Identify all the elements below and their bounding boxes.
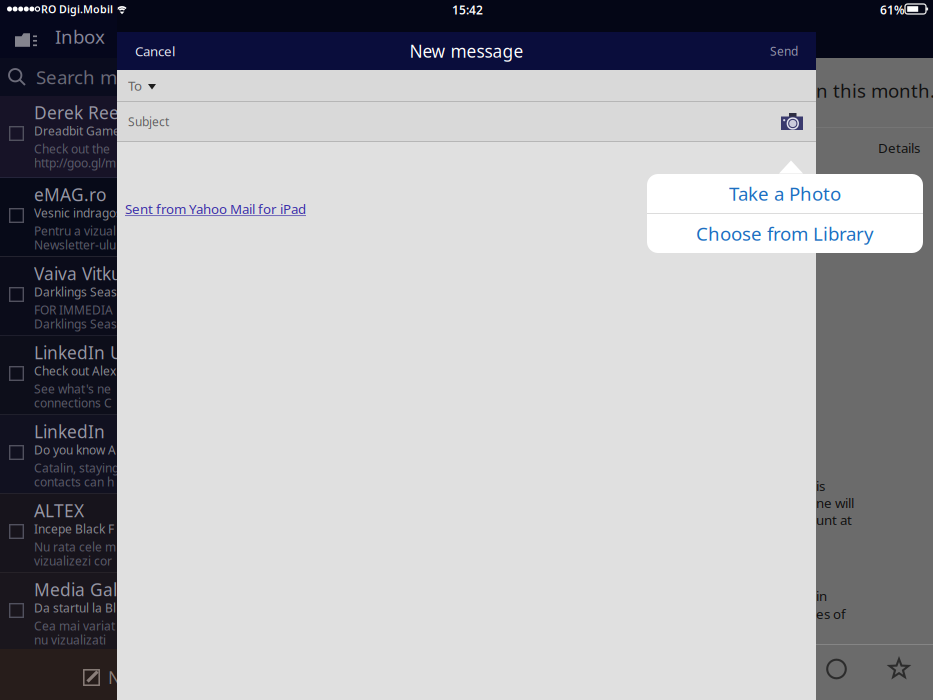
button[interactable]: N	[0, 649, 117, 700]
button[interactable]: Media Gala	[0, 573, 117, 649]
staticText: unt at	[816, 511, 852, 529]
staticText: Cea mai variat	[34, 618, 115, 634]
staticText: Darklings Seas	[34, 284, 117, 300]
button[interactable]: eMAG.ro	[0, 178, 117, 256]
staticText: Dreadbit Games	[34, 123, 126, 139]
staticText: Darklings Seas	[34, 316, 117, 332]
staticText: LinkedIn Up	[34, 341, 134, 364]
button[interactable]: Vaiva Vitkut	[0, 257, 117, 335]
staticText: FOR IMMEDIA	[34, 302, 113, 318]
staticText: Cancel	[135, 42, 175, 60]
button[interactable]: Take a Photo	[647, 174, 923, 213]
staticText: Sent from Yahoo Mail for iPad	[125, 200, 306, 218]
button[interactable]: To	[117, 70, 816, 101]
staticText: See what's ne	[34, 381, 111, 397]
staticText: in	[816, 587, 827, 605]
button[interactable]: Flag	[888, 658, 910, 680]
button[interactable]: Mark unread	[826, 658, 847, 679]
staticText: 15:42	[452, 2, 483, 18]
staticText: Vesnic indragost	[34, 205, 126, 221]
staticText: LinkedIn	[34, 420, 105, 443]
staticText: To	[128, 77, 142, 94]
button[interactable]: Send	[752, 32, 816, 70]
staticText: N	[108, 666, 121, 689]
staticText: connections C	[34, 395, 112, 411]
button[interactable]: Sent from Yahoo Mail for iPad	[125, 200, 306, 218]
staticText: eMAG.ro	[34, 183, 106, 206]
staticText: Details	[878, 139, 920, 157]
staticText: Nu rata cele m	[34, 539, 116, 555]
staticText: nu vizualizati	[34, 632, 106, 648]
staticText: 61%	[880, 2, 905, 18]
staticText: ne will	[816, 494, 854, 512]
staticText: Search mail	[36, 65, 137, 89]
staticText: Derek Reeve	[34, 101, 137, 124]
staticText: Check out Alex	[34, 363, 116, 379]
staticText: RO Digi.Mobil	[41, 2, 113, 16]
button[interactable]: Derek Reeve	[0, 96, 117, 177]
staticText: Pentru a vizual	[34, 223, 116, 239]
staticText: http://goo.gl/m	[34, 155, 116, 171]
staticText: Choose from Library	[696, 221, 874, 246]
staticText: n this month.	[816, 78, 933, 103]
staticText: Send	[770, 43, 798, 59]
staticText: Media Gala	[34, 578, 127, 601]
button[interactable]: LinkedIn	[0, 415, 117, 493]
staticText: es of	[816, 605, 846, 623]
staticText: Take a Photo	[729, 181, 841, 206]
staticText: Inbox	[55, 24, 105, 49]
staticText: Vaiva Vitkut	[34, 262, 128, 285]
button[interactable]: Folders	[15, 32, 38, 49]
staticText: Catalin, staying	[34, 460, 119, 476]
button[interactable]: LinkedIn Up	[0, 336, 117, 414]
staticText: Subject	[128, 113, 169, 129]
staticText: Newsletter-ulu	[34, 237, 116, 253]
staticText: Check out the	[34, 141, 110, 157]
staticText: Incepe Black F	[34, 521, 114, 537]
staticText: New message	[409, 39, 523, 62]
staticText: is	[816, 477, 825, 495]
button[interactable]: Cancel	[117, 32, 193, 70]
button[interactable]: ALTEX	[0, 494, 117, 572]
staticText: Do you know A	[34, 442, 116, 458]
staticText: vizualizezi cor	[34, 553, 112, 569]
button[interactable]: Choose from Library	[647, 214, 923, 253]
staticText: Da startul la Bl	[34, 600, 116, 616]
staticText: contacts can h	[34, 474, 114, 490]
staticText: ALTEX	[34, 499, 84, 522]
button[interactable]: Attach photo	[768, 102, 816, 141]
